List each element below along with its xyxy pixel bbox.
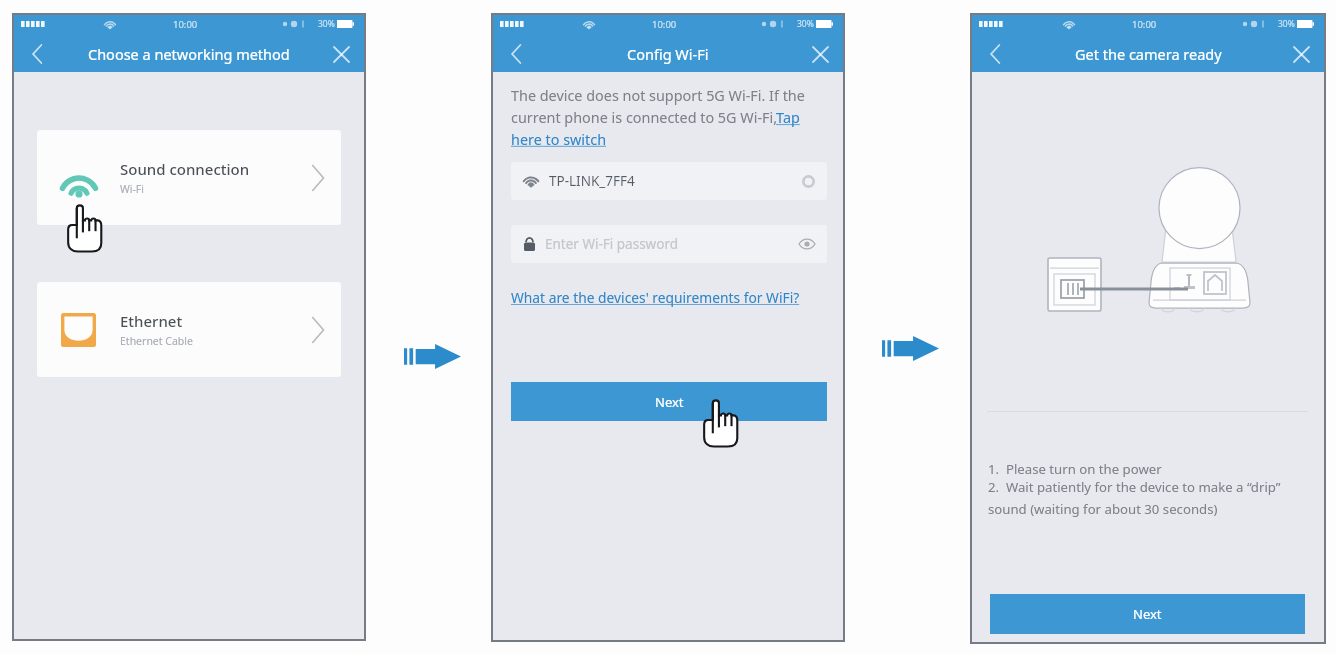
staticText: 10:00: [652, 18, 677, 31]
button[interactable]: Back: [982, 41, 1008, 67]
button[interactable]: Back: [24, 41, 50, 67]
staticText: Next: [1133, 605, 1162, 623]
staticText: 10:00: [173, 18, 198, 31]
button[interactable]: Enter Wi-Fi password: [511, 225, 827, 263]
staticText: 10:00: [1132, 18, 1157, 31]
staticText: Next: [655, 393, 684, 411]
staticText: Ethernet: [120, 311, 183, 331]
staticText: Get the camera ready: [1075, 44, 1222, 64]
staticText: 1. Please turn on the power: [988, 460, 1162, 478]
button[interactable]: Show password: [795, 232, 819, 256]
button[interactable]: Back: [503, 41, 529, 67]
button[interactable]: Close: [328, 41, 354, 67]
button[interactable]: Close: [1288, 41, 1314, 67]
staticText: 30%: [1278, 18, 1295, 30]
button[interactable]: Next: [511, 382, 827, 421]
button[interactable]: Next: [990, 594, 1305, 634]
staticText: 30%: [318, 18, 335, 30]
staticText: Enter Wi-Fi password: [545, 235, 679, 253]
button[interactable]: Clear: [797, 170, 819, 192]
staticText: Sound connection: [120, 159, 250, 179]
staticText: 30%: [797, 18, 814, 30]
button[interactable]: Sound connection: [37, 130, 341, 225]
button[interactable]: Close: [807, 41, 833, 67]
staticText: 2. Wait patiently for the device to make…: [988, 478, 1306, 518]
staticText: Config Wi-Fi: [627, 44, 709, 64]
button[interactable]: What are the devices' requirements for W…: [511, 288, 827, 307]
staticText: Ethernet Cable: [120, 334, 193, 348]
button[interactable]: Ethernet: [37, 282, 341, 377]
staticText: Wi-Fi: [120, 182, 145, 196]
staticText: Choose a networking method: [88, 44, 290, 64]
staticText: TP-LINK_7FF4: [549, 172, 635, 190]
button[interactable]: TP-LINK_7FF4: [511, 162, 827, 200]
button[interactable]: The device does not support 5G Wi-Fi. If…: [511, 86, 827, 149]
